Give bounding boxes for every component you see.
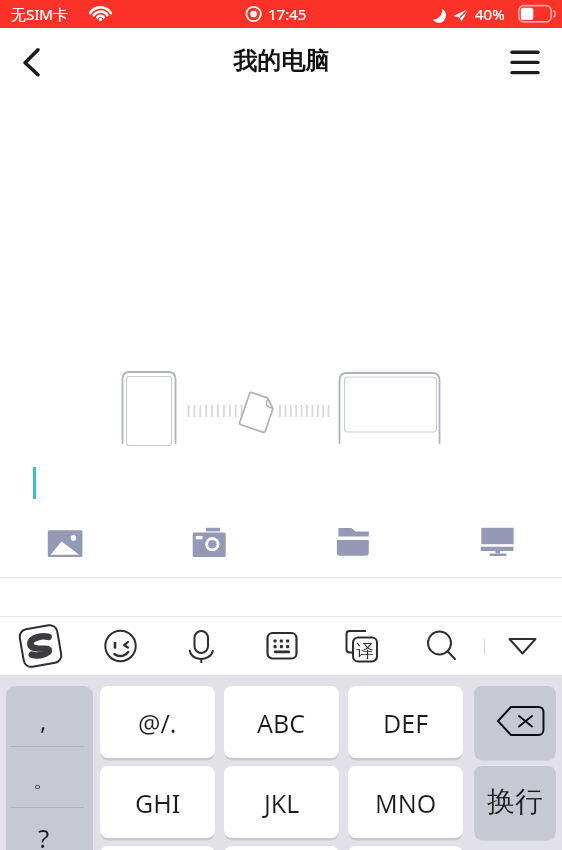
- button[interactable]: Menu: [501, 38, 549, 86]
- button[interactable]: Search: [415, 621, 464, 670]
- staticText: MNO: [375, 786, 437, 820]
- button[interactable]: Photos: [38, 518, 92, 572]
- button[interactable]: Camera: [182, 518, 236, 572]
- button[interactable]: TUV: [224, 846, 339, 850]
- button[interactable]: Keyboard: [257, 621, 306, 670]
- button[interactable]: PQRS: [100, 846, 215, 850]
- staticText: @/.: [138, 706, 177, 740]
- button[interactable]: 。: [6, 747, 93, 807]
- button[interactable]: WXYZ: [348, 846, 463, 850]
- button[interactable]: GHI: [100, 766, 215, 841]
- staticText: 17:45: [268, 4, 307, 24]
- staticText: ABC: [257, 706, 306, 740]
- button[interactable]: ?: [6, 808, 93, 850]
- button[interactable]: Files: [326, 518, 380, 572]
- staticText: ?: [38, 820, 50, 850]
- button[interactable]: Back: [6, 38, 54, 86]
- staticText: 译: [356, 640, 374, 663]
- button[interactable]: Sogou input: [16, 621, 65, 670]
- button[interactable]: ABC: [224, 686, 339, 761]
- staticText: DEF: [383, 706, 429, 740]
- button[interactable]: @/.: [100, 686, 215, 761]
- button[interactable]: Translate: [337, 621, 386, 670]
- button[interactable]: 换行: [474, 766, 556, 841]
- button[interactable]: JKL: [224, 766, 339, 841]
- button[interactable]: Emoji: [96, 621, 145, 670]
- staticText: ,: [40, 704, 47, 737]
- button[interactable]: Voice input: [177, 621, 226, 670]
- staticText: 。: [33, 766, 55, 794]
- button[interactable]: ,: [6, 686, 93, 746]
- staticText: 40%: [475, 4, 505, 24]
- button[interactable]: MNO: [348, 766, 463, 841]
- button[interactable]: DEF: [348, 686, 463, 761]
- button[interactable]: Hide keyboard: [498, 621, 547, 670]
- staticText: 换行: [487, 784, 543, 819]
- button[interactable]: My computer: [470, 518, 524, 572]
- button[interactable]: Backspace: [474, 686, 556, 761]
- staticText: 无SIM卡: [11, 4, 68, 24]
- staticText: JKL: [264, 786, 300, 820]
- staticText: GHI: [135, 786, 181, 820]
- staticText: 我的电脑: [233, 46, 329, 76]
